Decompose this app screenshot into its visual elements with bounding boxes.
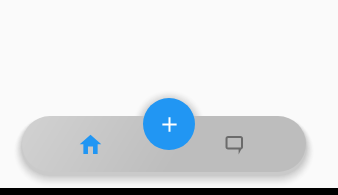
button[interactable]: Messages — [204, 116, 264, 172]
button[interactable]: Home — [60, 116, 120, 172]
button[interactable]: Add — [143, 98, 195, 150]
